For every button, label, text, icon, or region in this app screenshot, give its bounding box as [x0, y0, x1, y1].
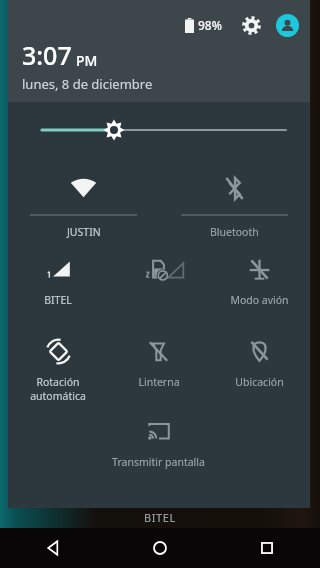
staticText: lunes, 8 de diciembre: [22, 75, 153, 93]
button[interactable]: Back: [0, 528, 106, 568]
button[interactable]: Home: [106, 528, 213, 568]
staticText: 3:07: [22, 38, 72, 72]
button[interactable]: Recents: [213, 528, 320, 568]
button[interactable]: Brightness: [8, 102, 310, 158]
button[interactable]: User profile: [274, 12, 300, 38]
button[interactable]: Bluetooth: [159, 158, 310, 239]
staticText: JUSTIN: [67, 225, 101, 239]
staticText: Modo avión: [230, 293, 289, 307]
staticText: Rotación automática: [10, 375, 106, 403]
button[interactable]: Settings: [238, 12, 264, 38]
staticText: BITEL: [44, 293, 72, 307]
button[interactable]: Transmitir pantalla: [108, 404, 209, 469]
button[interactable]: BITEL: [8, 242, 108, 307]
button[interactable]: JUSTIN: [8, 158, 159, 239]
button[interactable]: Linterna: [108, 324, 209, 389]
staticText: Linterna: [138, 375, 180, 389]
button[interactable]: Battery 98 percent: [183, 15, 224, 35]
staticText: BITEL: [144, 510, 176, 525]
button[interactable]: Ubicación: [209, 324, 310, 389]
staticText: Bluetooth: [210, 225, 259, 239]
staticText: Ubicación: [235, 375, 284, 389]
staticText: Transmitir pantalla: [112, 455, 205, 469]
button[interactable]: Modo avión: [209, 242, 310, 307]
staticText: 98%: [198, 17, 222, 33]
button[interactable]: SIM 2 no service: [108, 242, 209, 293]
staticText: PM: [76, 51, 98, 70]
button[interactable]: Rotación automática: [8, 324, 108, 403]
